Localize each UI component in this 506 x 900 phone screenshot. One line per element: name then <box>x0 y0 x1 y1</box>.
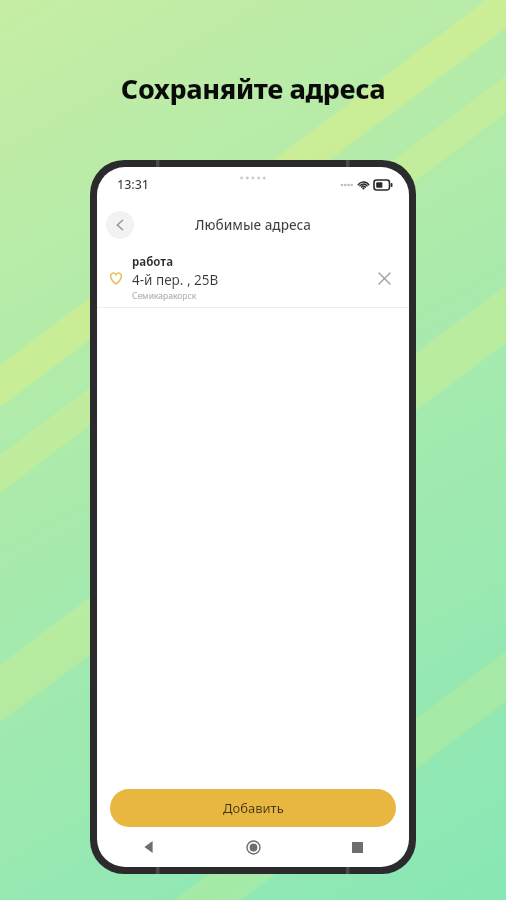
button[interactable]: Remove address <box>371 265 397 291</box>
staticText: Добавить <box>223 799 284 817</box>
staticText: Любимые адреса <box>195 216 311 234</box>
staticText: Семикаракорск <box>132 290 197 302</box>
button[interactable]: работа <box>97 249 409 307</box>
button[interactable]: Recent apps <box>305 827 409 867</box>
staticText: 13:31 <box>117 176 150 193</box>
button[interactable]: Back <box>97 827 201 867</box>
staticText: 4-й пер. , 25В <box>132 271 219 289</box>
button[interactable]: Home <box>201 827 305 867</box>
staticText: Сохраняйте адреса <box>0 70 506 107</box>
staticText: работа <box>132 254 174 270</box>
button[interactable]: Добавить <box>110 789 396 827</box>
button[interactable]: Back <box>106 211 134 239</box>
